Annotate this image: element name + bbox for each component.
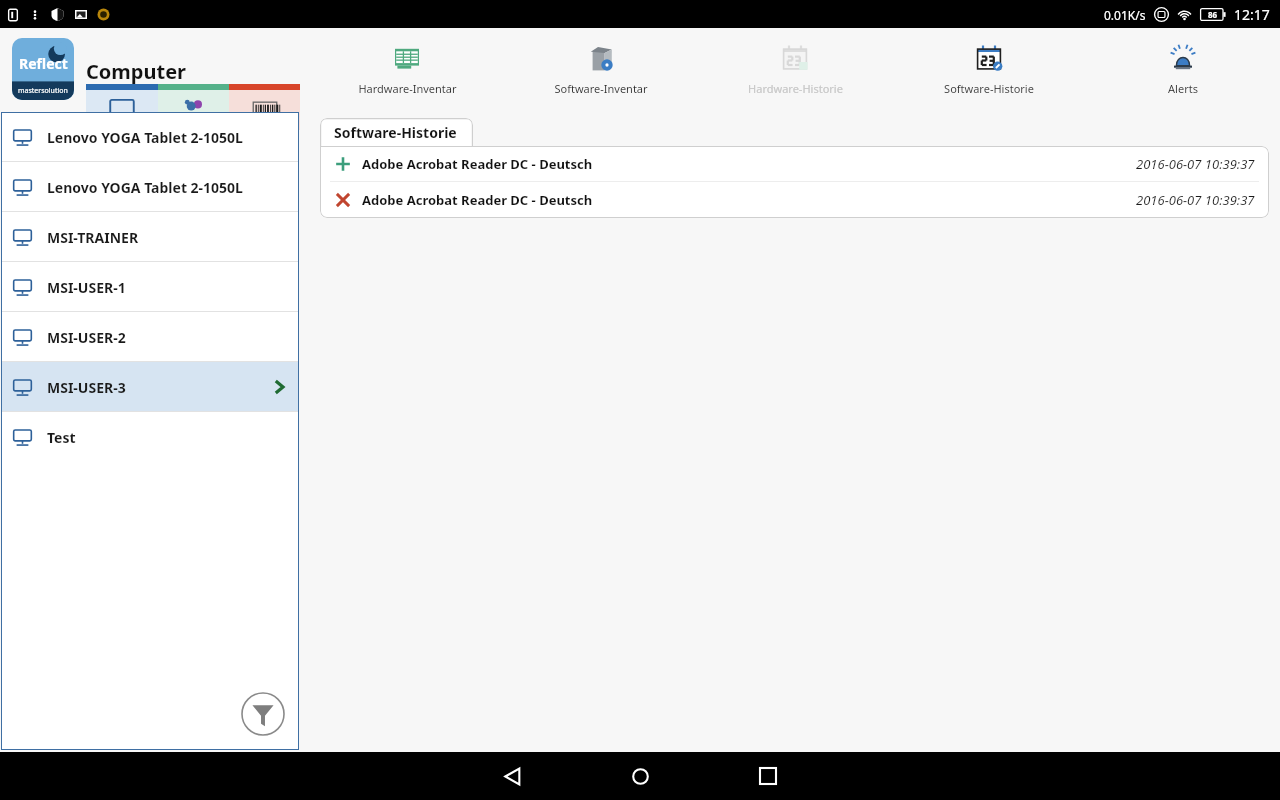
button[interactable]: MSI-USER-2	[1, 312, 299, 362]
button[interactable]: Hardware-Historie	[698, 28, 892, 112]
button[interactable]: Back	[448, 752, 576, 800]
staticText: Software-Historie	[944, 81, 1034, 96]
button[interactable]	[158, 84, 229, 130]
button[interactable]	[86, 84, 158, 130]
button[interactable]: Software-Historie	[320, 118, 473, 146]
button[interactable]: Reflect mastersolution logo	[12, 38, 74, 100]
staticText: Software-Historie	[334, 123, 457, 142]
staticText: Adobe Acrobat Reader DC - Deutsch	[362, 191, 593, 209]
button[interactable]: Adobe Acrobat Reader DC - Deutsch	[320, 182, 1269, 217]
staticText: 2016-06-07 10:39:37	[1136, 155, 1255, 173]
button[interactable]: Software-Historie	[892, 28, 1086, 112]
button[interactable]: Test	[1, 412, 299, 462]
staticText: Test	[47, 428, 76, 447]
staticText: 86	[1208, 9, 1218, 20]
staticText: MSI-USER-3	[47, 378, 126, 397]
button[interactable]: Lenovo YOGA Tablet 2-1050L	[1, 112, 299, 162]
staticText: Hardware-Inventar	[358, 81, 457, 96]
button[interactable]: Home	[576, 752, 704, 800]
staticText: MSI-USER-1	[47, 278, 126, 297]
staticText: Reflect	[19, 54, 68, 73]
staticText: Adobe Acrobat Reader DC - Deutsch	[362, 155, 593, 173]
button[interactable]: Lenovo YOGA Tablet 2-1050L	[1, 162, 299, 212]
button[interactable]: MSI-USER-1	[1, 262, 299, 312]
button[interactable]	[229, 84, 300, 130]
button[interactable]: Software-Inventar	[504, 28, 698, 112]
button[interactable]: Adobe Acrobat Reader DC - Deutsch	[320, 146, 1269, 181]
staticText: 2016-06-07 10:39:37	[1136, 191, 1255, 209]
button[interactable]: Hardware-Inventar	[310, 28, 504, 112]
button[interactable]: Filter	[241, 692, 285, 736]
staticText: Hardware-Historie	[748, 81, 843, 96]
staticText: 12:17	[1234, 5, 1270, 24]
staticText: mastersolution	[18, 86, 68, 96]
staticText: 0.01K/s	[1104, 7, 1146, 23]
staticText: Lenovo YOGA Tablet 2-1050L	[47, 128, 243, 147]
staticText: Software-Inventar	[554, 81, 648, 96]
staticText: MSI-USER-2	[47, 328, 126, 347]
button[interactable]: Alerts	[1086, 28, 1280, 112]
staticText: Lenovo YOGA Tablet 2-1050L	[47, 178, 243, 197]
button[interactable]: MSI-USER-3	[1, 362, 299, 412]
button[interactable]: Recent apps	[704, 752, 832, 800]
button[interactable]: MSI-TRAINER	[1, 212, 299, 262]
staticText: Computer	[86, 58, 187, 85]
staticText: Alerts	[1168, 81, 1198, 96]
staticText: MSI-TRAINER	[47, 228, 139, 247]
